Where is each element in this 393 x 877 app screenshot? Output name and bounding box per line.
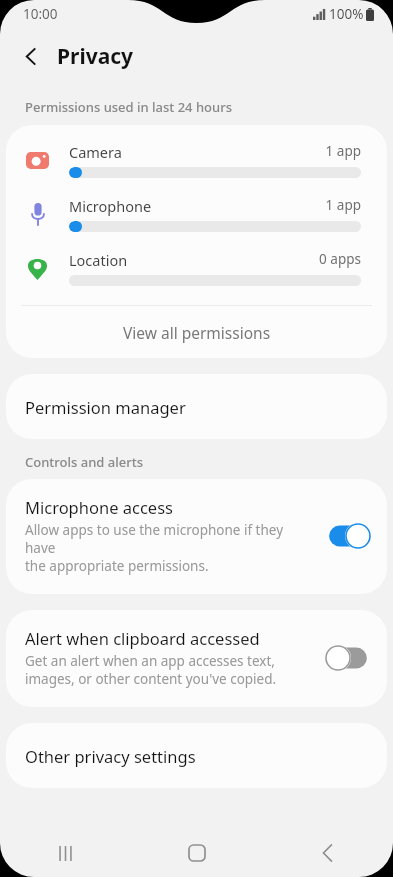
staticText: Microphone access	[25, 496, 173, 518]
button[interactable]: Microphone access	[6, 479, 387, 594]
staticText: Location	[69, 250, 319, 270]
button[interactable]: Toggle off	[325, 645, 371, 671]
button[interactable]: Back	[11, 36, 51, 76]
staticText: Controls and alerts	[25, 453, 143, 471]
staticText: Other privacy settings	[25, 745, 196, 767]
staticText: Microphone	[69, 196, 325, 216]
button[interactable]: Home	[131, 829, 262, 877]
button[interactable]: Back	[262, 829, 393, 877]
button[interactable]: Toggle on	[325, 523, 371, 549]
staticText: Get an alert when an app accesses text, …	[25, 652, 277, 688]
button[interactable]: View all permissions	[6, 306, 387, 358]
staticText: Allow apps to use the microphone if they…	[25, 521, 315, 575]
staticText: 1 app	[325, 142, 361, 160]
staticText: View all permissions	[123, 322, 271, 343]
staticText: Permissions used in last 24 hours	[25, 98, 232, 116]
staticText: Camera	[69, 142, 325, 162]
button[interactable]: Recent apps	[0, 829, 131, 877]
button[interactable]: Permission manager	[6, 374, 387, 439]
button[interactable]: Other privacy settings	[6, 723, 387, 788]
button[interactable]: Alert when clipboard accessed	[6, 610, 387, 707]
staticText: Permission manager	[25, 396, 186, 418]
staticText: 10:00	[23, 5, 58, 23]
staticText: 1 app	[325, 196, 361, 214]
staticText: 0 apps	[319, 250, 361, 268]
staticText: Alert when clipboard accessed	[25, 627, 260, 649]
staticText: Privacy	[57, 42, 134, 71]
staticText: 100%	[329, 5, 364, 23]
